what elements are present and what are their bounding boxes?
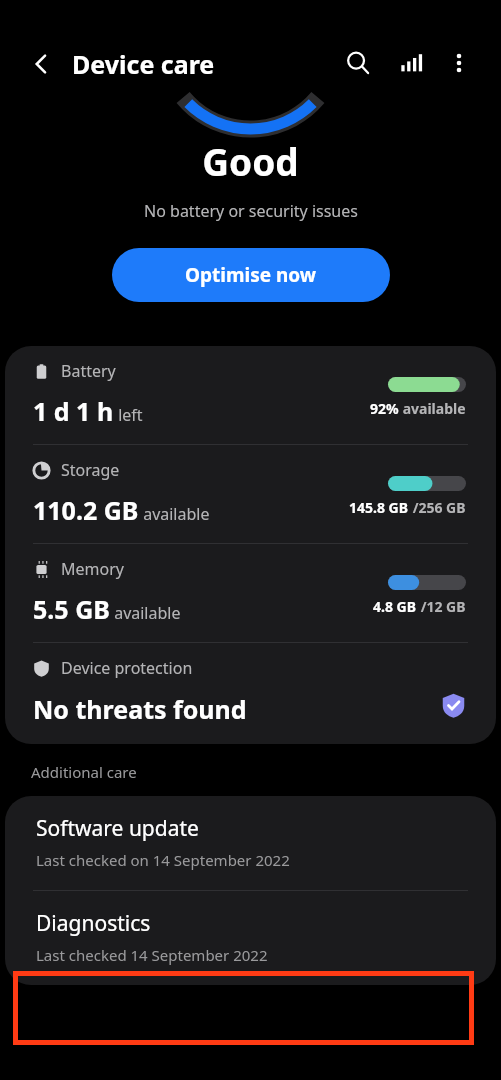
staticText: /256 GB [409, 498, 466, 517]
staticText: Diagnostics [36, 909, 151, 938]
button[interactable]: Software update [5, 796, 496, 890]
button[interactable]: More options [438, 42, 480, 84]
staticText: Last checked on 14 September 2022 [36, 850, 290, 870]
staticText: Additional care [31, 762, 137, 782]
staticText: available [139, 503, 210, 525]
staticText: 92% [370, 399, 399, 418]
button[interactable]: Usage statistics [390, 42, 432, 84]
staticText: left [114, 404, 143, 426]
button[interactable]: Search [337, 42, 379, 84]
staticText: Good [202, 136, 299, 186]
staticText: Device care [72, 47, 215, 81]
staticText: 1 d 1 h [33, 394, 114, 428]
button[interactable]: Back [20, 42, 64, 86]
button[interactable]: Optimise now [112, 248, 390, 302]
staticText: 145.8 GB [349, 498, 409, 517]
staticText: Memory [61, 558, 124, 580]
button[interactable]: Storage [5, 445, 496, 543]
button[interactable]: Device protection [5, 643, 496, 744]
button[interactable]: Battery [5, 346, 496, 444]
button[interactable]: Memory [5, 544, 496, 642]
staticText: available [110, 602, 181, 624]
staticText: Software update [36, 814, 199, 843]
button[interactable]: Diagnostics [5, 891, 496, 985]
staticText: Last checked 14 September 2022 [36, 945, 268, 965]
staticText: /12 GB [417, 597, 466, 616]
staticText: Optimise now [185, 262, 317, 288]
staticText: 5.5 GB [33, 592, 110, 626]
staticText: 110.2 GB [33, 493, 139, 527]
staticText: 4.8 GB [373, 597, 417, 616]
staticText: available [399, 399, 466, 418]
staticText: Storage [61, 459, 120, 481]
staticText: Device protection [61, 657, 193, 679]
staticText: Battery [61, 360, 116, 382]
staticText: No threats found [33, 692, 247, 726]
staticText: No battery or security issues [144, 200, 358, 222]
